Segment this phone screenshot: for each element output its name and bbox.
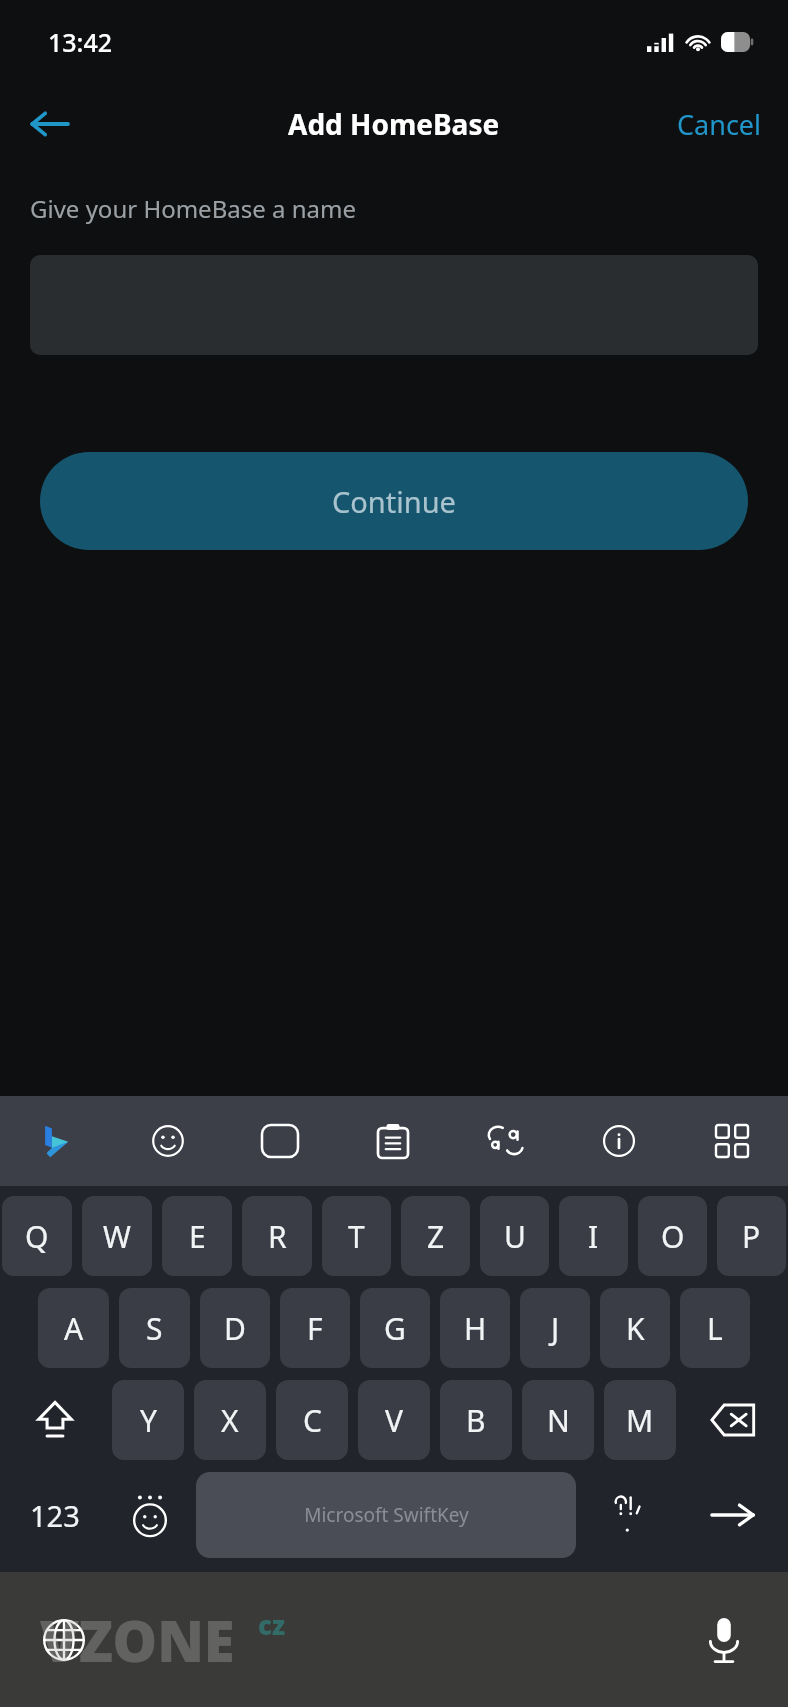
button[interactable]: K (600, 1288, 670, 1368)
button[interactable]: GIF (224, 1096, 336, 1186)
button[interactable]: L (680, 1288, 750, 1368)
button[interactable]: Punctuation (582, 1472, 678, 1558)
button[interactable]: Info (562, 1096, 675, 1186)
button[interactable]: R (242, 1196, 312, 1276)
button[interactable]: Cancel (651, 94, 788, 155)
button[interactable]: J (520, 1288, 590, 1368)
button[interactable]: G (360, 1288, 430, 1368)
staticText: H (464, 1308, 487, 1349)
staticText: K (626, 1308, 645, 1349)
button[interactable]: Emoji (110, 1472, 190, 1558)
button[interactable]: Continue (40, 452, 748, 550)
staticText: W (103, 1216, 131, 1257)
button[interactable]: I (559, 1196, 628, 1276)
button[interactable]: P (717, 1196, 786, 1276)
staticText: VZONE (40, 1602, 235, 1678)
button[interactable]: Backspace (678, 1380, 788, 1460)
staticText: Z (427, 1216, 445, 1257)
button[interactable]: U (480, 1196, 549, 1276)
button[interactable]: V (358, 1380, 430, 1460)
button[interactable]: Y (112, 1380, 184, 1460)
staticText: B (466, 1400, 486, 1441)
staticText: Q (25, 1216, 49, 1257)
button[interactable]: H (440, 1288, 510, 1368)
staticText: M (626, 1400, 654, 1441)
staticText: L (707, 1308, 723, 1349)
button[interactable]: B (440, 1380, 512, 1460)
staticText: S (146, 1308, 163, 1349)
staticText: R (268, 1216, 287, 1257)
button[interactable]: O (638, 1196, 707, 1276)
button[interactable]: C (276, 1380, 348, 1460)
staticText: T (348, 1216, 365, 1257)
staticText: O (661, 1216, 685, 1257)
button[interactable]: X (194, 1380, 266, 1460)
button[interactable]: Q (2, 1196, 72, 1276)
button[interactable]: Shift (0, 1380, 110, 1460)
staticText: Add HomeBase (288, 105, 500, 143)
staticText: D (224, 1308, 246, 1349)
staticText: J (551, 1308, 560, 1349)
button[interactable]: 123 (0, 1472, 110, 1558)
staticText: V (385, 1400, 403, 1441)
button[interactable]: A (38, 1288, 109, 1368)
staticText: Y (140, 1400, 157, 1441)
button[interactable]: W (82, 1196, 152, 1276)
staticText: N (547, 1400, 570, 1441)
staticText: 13:42 (48, 25, 113, 59)
button[interactable]: T (322, 1196, 391, 1276)
button[interactable]: S (119, 1288, 190, 1368)
button[interactable]: Translate (449, 1096, 562, 1186)
button[interactable]: Microsoft SwiftKey (196, 1472, 576, 1558)
button[interactable]: Change language (24, 1600, 104, 1680)
button[interactable]: Bing (0, 1096, 112, 1186)
staticText: 123 (30, 1496, 80, 1535)
staticText: Continue (332, 482, 456, 521)
button[interactable]: Emoji (112, 1096, 224, 1186)
button[interactable]: M (604, 1380, 676, 1460)
staticText: Cancel (677, 106, 762, 143)
button[interactable]: D (200, 1288, 270, 1368)
button[interactable]: Clipboard (336, 1096, 449, 1186)
staticText: P (742, 1216, 761, 1257)
button[interactable]: Back (14, 89, 84, 159)
staticText: A (64, 1308, 84, 1349)
staticText: E (189, 1216, 206, 1257)
staticText: X (221, 1400, 239, 1441)
staticText: Microsoft SwiftKey (304, 1502, 469, 1528)
staticText: Give your HomeBase a name (30, 192, 356, 225)
button[interactable]: E (162, 1196, 232, 1276)
staticText: cz (258, 1607, 286, 1642)
button[interactable]: Z (401, 1196, 470, 1276)
staticText: F (307, 1308, 323, 1349)
staticText: I (588, 1216, 599, 1257)
staticText: U (504, 1216, 526, 1257)
button[interactable]: Voice input (684, 1600, 764, 1680)
button[interactable]: More (675, 1096, 788, 1186)
staticText: G (384, 1308, 406, 1349)
button[interactable]: Enter (678, 1472, 788, 1558)
button[interactable]: F (280, 1288, 350, 1368)
button[interactable]: N (522, 1380, 594, 1460)
staticText: C (303, 1400, 322, 1441)
